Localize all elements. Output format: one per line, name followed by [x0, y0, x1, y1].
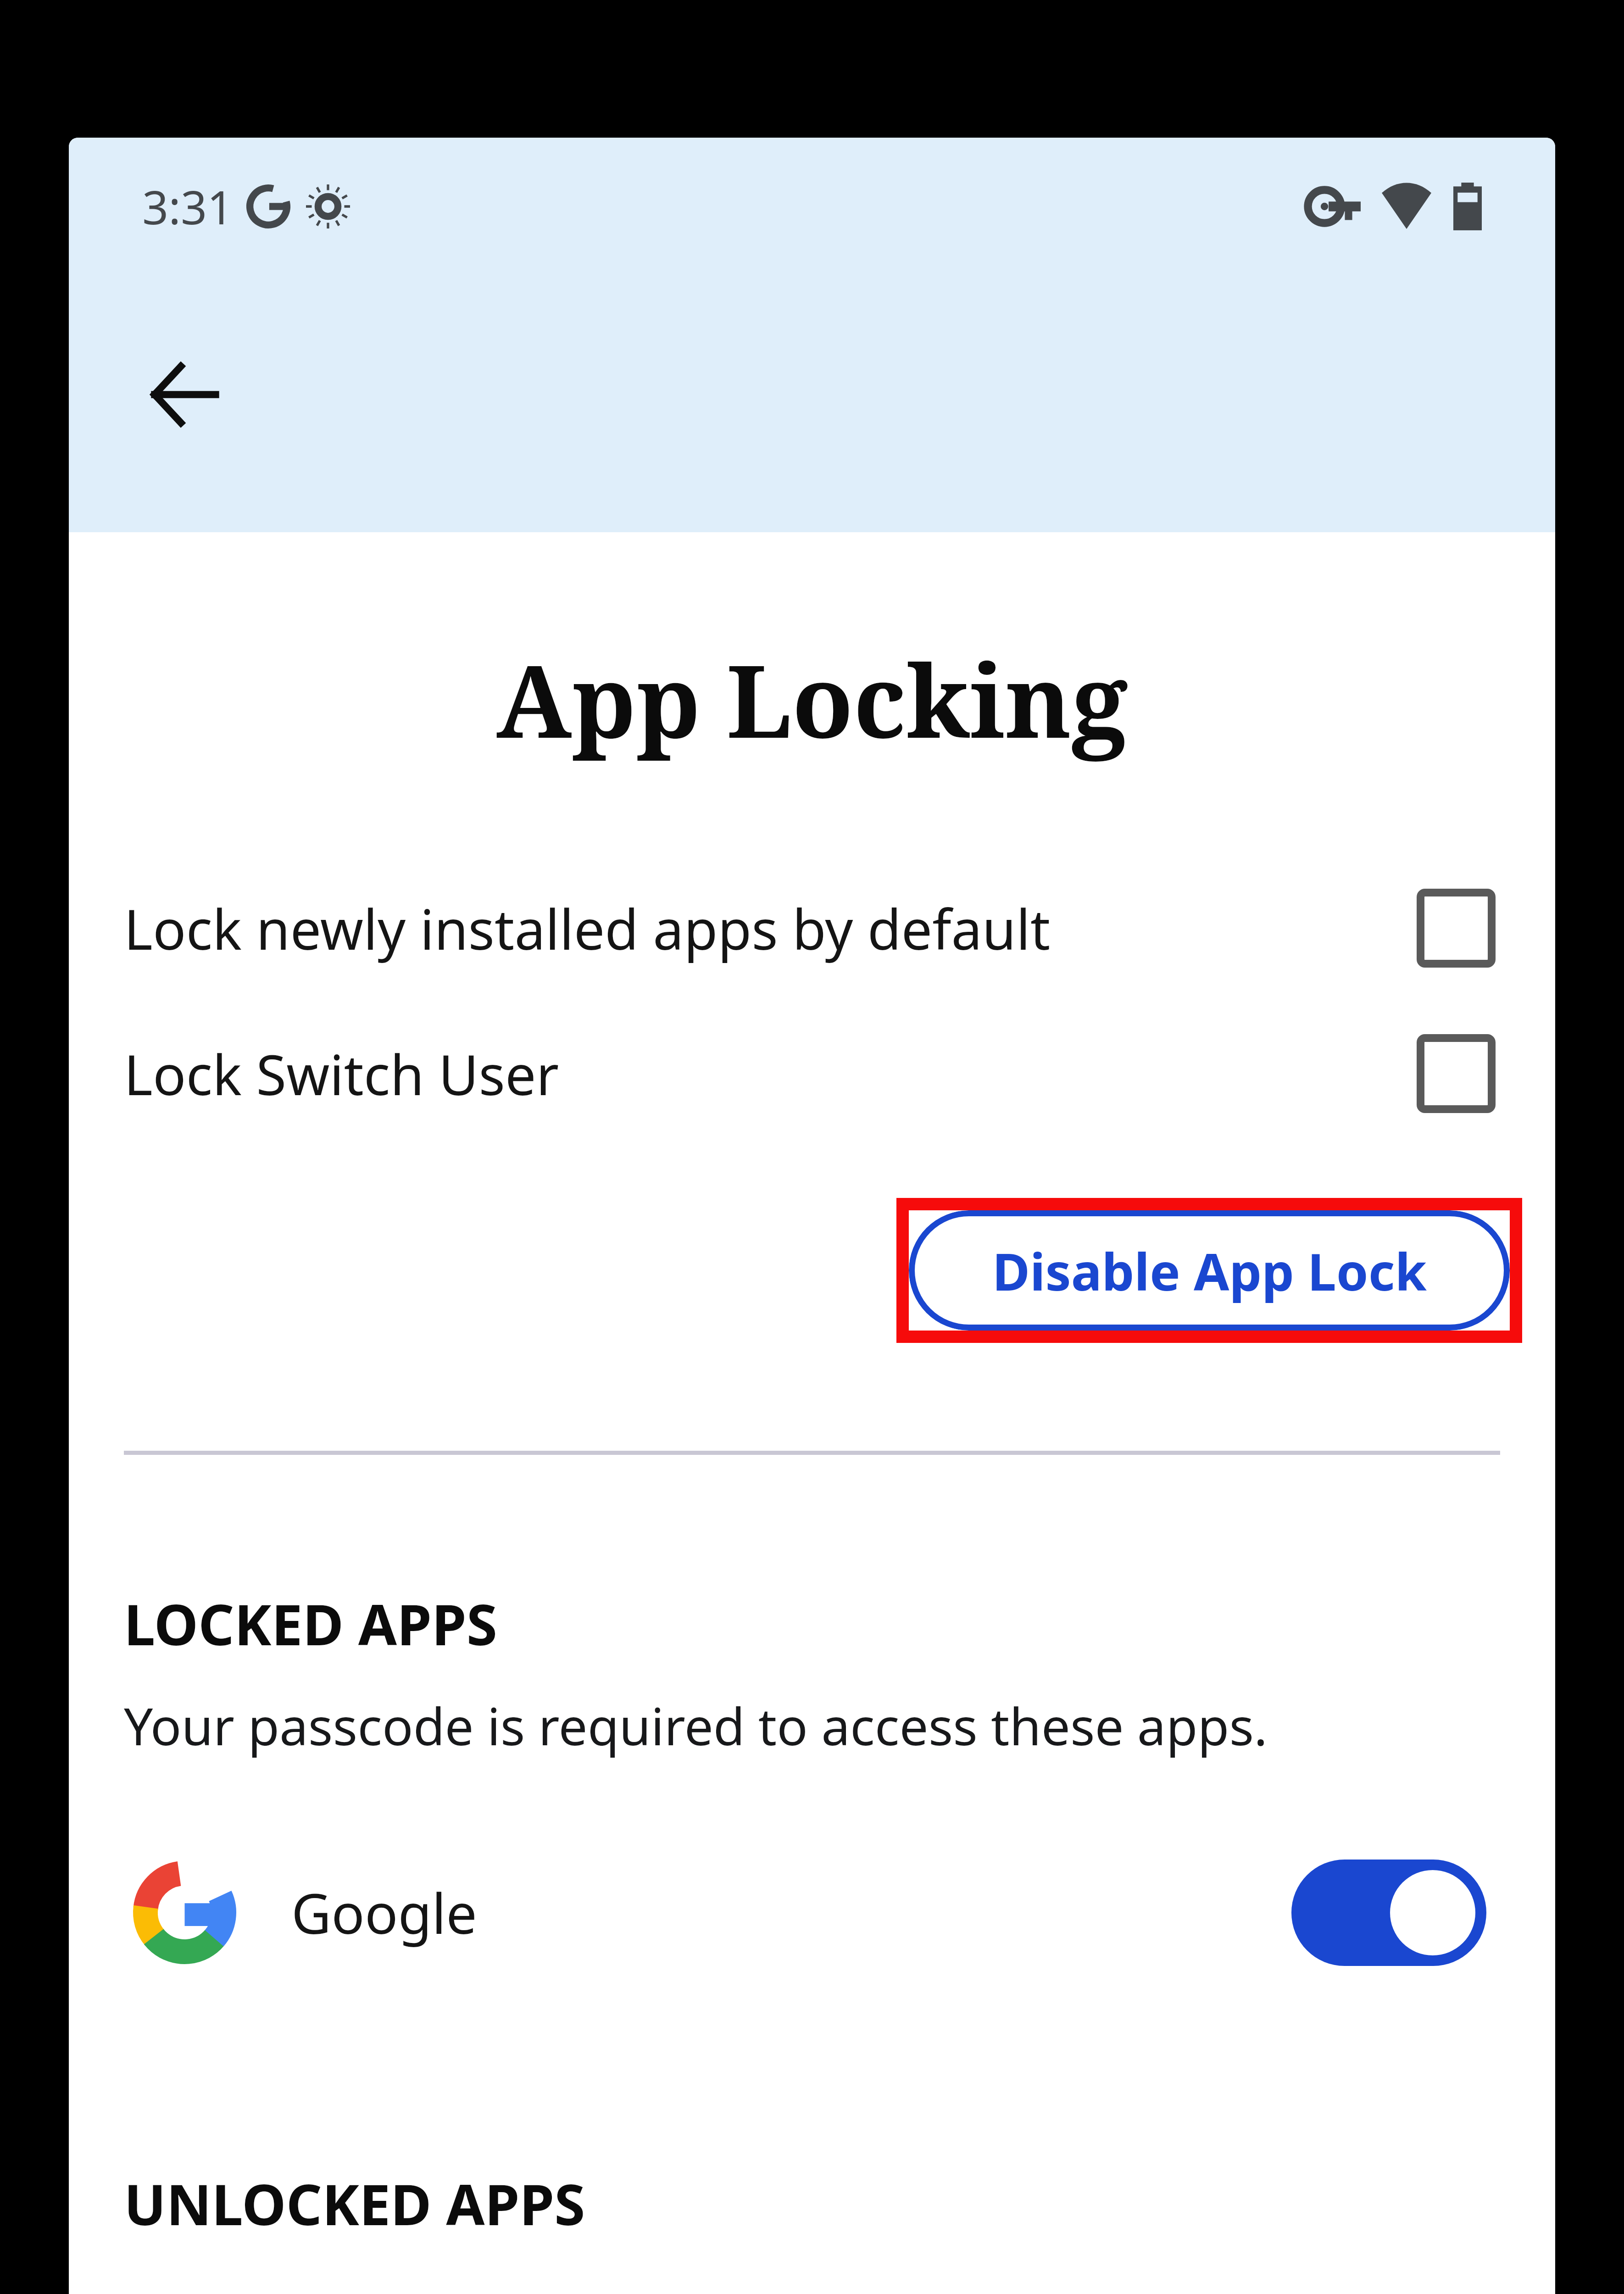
button[interactable]: Lock newly installed apps by default	[69, 889, 1555, 968]
staticText: App Locking	[69, 631, 1555, 767]
staticText: LOCKED APPS	[124, 1586, 498, 1662]
staticText: Lock Switch User	[124, 1036, 1417, 1111]
button[interactable]: Lock Switch User	[69, 1034, 1555, 1113]
staticText: Your passcode is required to access thes…	[124, 1690, 1268, 1760]
button[interactable]: Back	[124, 335, 243, 454]
staticText: 3:31	[142, 175, 234, 238]
button[interactable]: Google	[69, 1797, 1555, 2028]
staticText: Google	[291, 1875, 1291, 1950]
staticText: UNLOCKED APPS	[124, 2166, 585, 2242]
staticText: Lock newly installed apps by default	[124, 891, 1417, 966]
staticText: Disable App Lock	[992, 1236, 1427, 1306]
button[interactable]: Disable App Lock	[909, 1210, 1510, 1331]
